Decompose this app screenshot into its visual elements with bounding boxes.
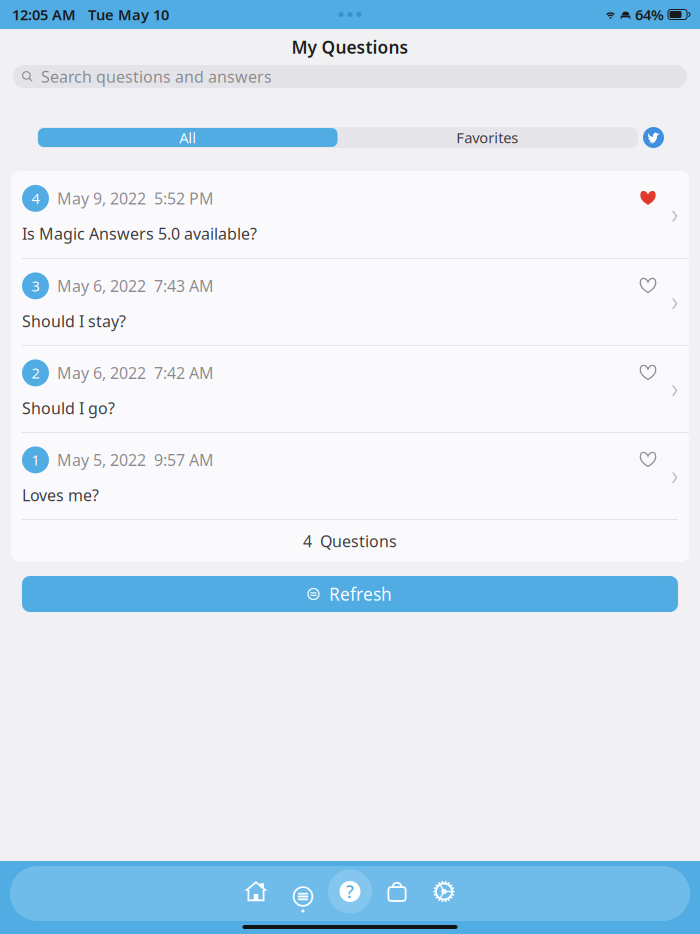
button[interactable]: 3 [11,258,689,345]
staticText: 64% [631,5,664,24]
button[interactable]: Twitter [643,127,664,148]
staticText: May 6, 2022 7:43 AM [49,275,214,296]
staticText: 4 Questions [303,530,397,552]
staticText: 1 [31,450,39,470]
staticText: ? [346,880,354,903]
staticText: Loves me? [22,484,99,506]
staticText: Should I stay? [22,310,126,332]
staticText: Refresh [319,582,392,605]
button[interactable]: All [38,128,337,147]
button[interactable]: Home [232,865,279,917]
button[interactable]: 4 [11,171,689,258]
staticText: 3 [31,276,39,296]
staticText: Favorites [456,128,518,147]
staticText: May 5, 2022 9:57 AM [49,449,214,470]
staticText: All [179,128,196,147]
staticText: May 6, 2022 7:42 AM [49,362,214,383]
staticText: Should I go? [22,397,115,419]
staticText: 2 [31,363,39,383]
staticText: 12:05 AM [12,5,76,24]
staticText: Search questions and answers [33,66,272,87]
staticText: Is Magic Answers 5.0 available? [22,223,257,244]
staticText: May 9, 2022 5:52 PM [49,188,214,209]
staticText: Tue May 10 [76,5,169,24]
staticText: My Questions [291,35,408,58]
button[interactable]: Favorites [337,128,637,147]
button[interactable]: 1 [11,432,689,519]
button[interactable]: Feed [279,865,326,917]
button[interactable]: Questions [326,865,373,917]
button[interactable]: Settings [420,865,467,917]
button[interactable]: 2 [11,345,689,432]
button[interactable]: Store [373,865,420,917]
button[interactable]: Refresh [22,576,678,612]
staticText: 4 [31,189,39,208]
